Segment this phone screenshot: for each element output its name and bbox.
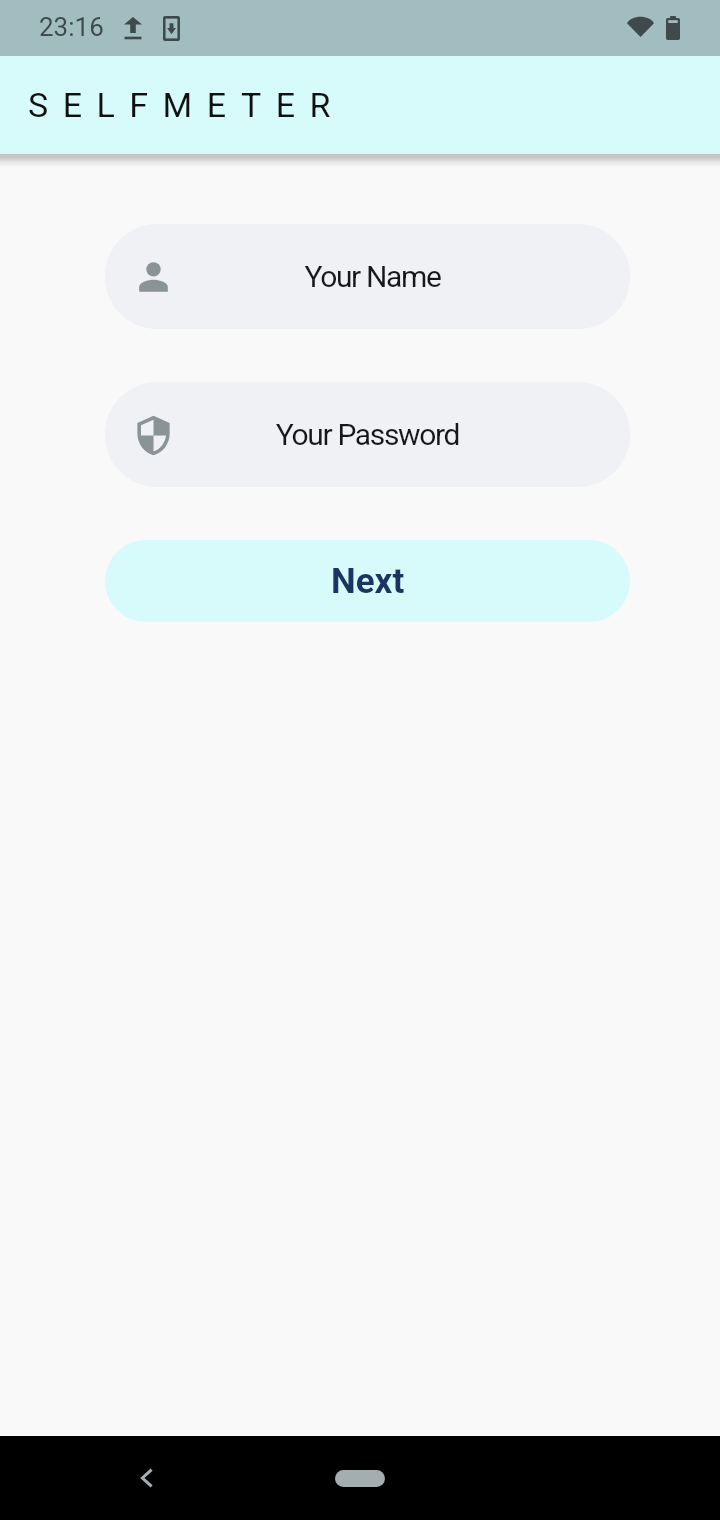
button[interactable]: Home — [335, 1470, 385, 1487]
button[interactable]: Next — [105, 540, 630, 622]
staticText: 23:16 — [39, 12, 104, 42]
button[interactable]: Your Password — [105, 382, 630, 487]
button[interactable]: Back — [125, 1456, 169, 1500]
staticText: Next — [331, 561, 405, 602]
button[interactable]: Your Name — [105, 224, 630, 329]
staticText: Your Name — [200, 259, 545, 294]
staticText: SELFMETER — [28, 85, 346, 125]
staticText: Your Password — [195, 417, 540, 452]
